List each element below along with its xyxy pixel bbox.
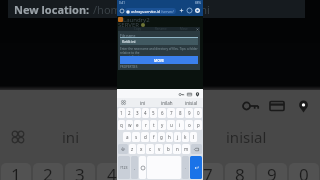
button[interactable]: 3: [134, 108, 141, 118]
button[interactable]: j: [174, 132, 181, 142]
staticText: 7: [203, 163, 213, 180]
button[interactable]: 9: [257, 163, 287, 180]
button[interactable]: Profile: [194, 7, 201, 14]
button[interactable]: l: [190, 132, 197, 142]
button[interactable]: 6: [161, 163, 191, 180]
staticText: 8: [235, 163, 245, 180]
button[interactable]: z: [129, 144, 136, 154]
button[interactable]: r: [142, 120, 149, 130]
button[interactable]: 3: [65, 163, 95, 180]
staticText: k: [184, 134, 187, 140]
staticText: Move: [180, 27, 188, 31]
button[interactable]: k: [182, 132, 189, 142]
button[interactable]: 7: [193, 163, 223, 180]
button[interactable]: 4: [142, 108, 149, 118]
button[interactable]: Close: [195, 27, 199, 31]
staticText: i: [179, 122, 181, 128]
button[interactable]: a: [123, 132, 131, 142]
button[interactable]: Copy: [126, 27, 149, 31]
staticText: g: [160, 134, 163, 140]
button[interactable]: c: [146, 144, 154, 154]
button[interactable]: Payment methods: [265, 95, 289, 117]
button[interactable]: Menu: [119, 8, 125, 14]
button[interactable]: q: [118, 120, 125, 130]
button[interactable]: b: [164, 144, 172, 154]
button[interactable]: o: [185, 120, 193, 130]
button[interactable]: 1: [118, 108, 125, 118]
button[interactable]: x: [137, 144, 145, 154]
button[interactable]: v: [155, 144, 163, 154]
button[interactable]: n: [173, 144, 181, 154]
button[interactable]: [191, 144, 202, 154]
button[interactable]: Addresses: [193, 90, 201, 98]
button[interactable]: ,: [131, 156, 138, 179]
button[interactable]: m: [182, 144, 190, 154]
button[interactable]: Clipboard: [0, 112, 35, 162]
button[interactable]: ini: [35, 112, 106, 162]
staticText: 8: [179, 110, 182, 116]
button[interactable]: ashrays.service.id: [125, 8, 176, 14]
button[interactable]: [106, 112, 212, 162]
button[interactable]: Emoji: [139, 156, 146, 179]
staticText: ,: [134, 165, 136, 170]
button[interactable]: i: [176, 120, 184, 130]
button[interactable]: Addresses: [291, 95, 315, 117]
button[interactable]: 5: [129, 163, 159, 180]
button[interactable]: Enter: [190, 156, 202, 179]
button[interactable]: 0: [194, 108, 202, 118]
button[interactable]: ?123: [118, 156, 130, 179]
button[interactable]: 5: [150, 108, 157, 118]
staticText: 5: [139, 163, 149, 180]
button[interactable]: g: [158, 132, 165, 142]
staticText: c: [149, 146, 152, 152]
button[interactable]: 8: [225, 163, 255, 180]
staticText: 0: [197, 110, 200, 116]
button[interactable]: Ketik ini: [120, 37, 198, 45]
button[interactable]: Move: [172, 27, 195, 31]
button[interactable]: s: [132, 132, 140, 142]
staticText: f: [153, 134, 155, 140]
button[interactable]: 9: [185, 108, 193, 118]
button[interactable]: u: [167, 120, 175, 130]
button[interactable]: 2: [126, 108, 133, 118]
button[interactable]: d: [141, 132, 149, 142]
button[interactable]: f: [150, 132, 157, 142]
button[interactable]: New tab: [178, 7, 185, 14]
button[interactable]: y: [158, 120, 166, 130]
button[interactable]: p: [194, 120, 202, 130]
button[interactable]: inisial: [212, 112, 281, 162]
button[interactable]: 6: [158, 108, 166, 118]
button[interactable]: 1: [1, 163, 31, 180]
button[interactable]: [118, 144, 128, 154]
button[interactable]: inisial: [179, 98, 203, 107]
staticText: y: [161, 122, 164, 128]
button[interactable]: inilah: [155, 98, 179, 107]
button[interactable]: h: [166, 132, 173, 142]
button[interactable]: 2: [33, 163, 63, 180]
button[interactable]: 7: [167, 108, 175, 118]
button[interactable]: 8: [176, 108, 184, 118]
button[interactable]: Rename: [149, 27, 172, 31]
staticText: x: [140, 146, 143, 152]
button[interactable]: 4: [97, 163, 127, 180]
button[interactable]: Payment methods: [185, 90, 193, 98]
staticText: b: [167, 146, 170, 152]
button[interactable]: 0: [289, 163, 319, 180]
button[interactable]: e: [134, 120, 141, 130]
staticText: p: [197, 122, 200, 128]
staticText: Copy: [134, 27, 142, 31]
staticText: MOVE: [154, 58, 164, 63]
button[interactable]: Passwords: [177, 90, 185, 98]
staticText: u: [170, 122, 173, 128]
button[interactable]: MOVE: [120, 56, 198, 64]
button[interactable]: ini: [130, 98, 155, 107]
button[interactable]: t: [150, 120, 157, 130]
button[interactable]: Tabs: [186, 7, 193, 14]
button[interactable]: Clipboard: [117, 98, 130, 107]
button[interactable]: Passwords: [239, 95, 263, 117]
staticText: Ketik ini: [122, 39, 136, 44]
button[interactable]: w: [126, 120, 133, 130]
staticText: ini: [140, 100, 146, 106]
